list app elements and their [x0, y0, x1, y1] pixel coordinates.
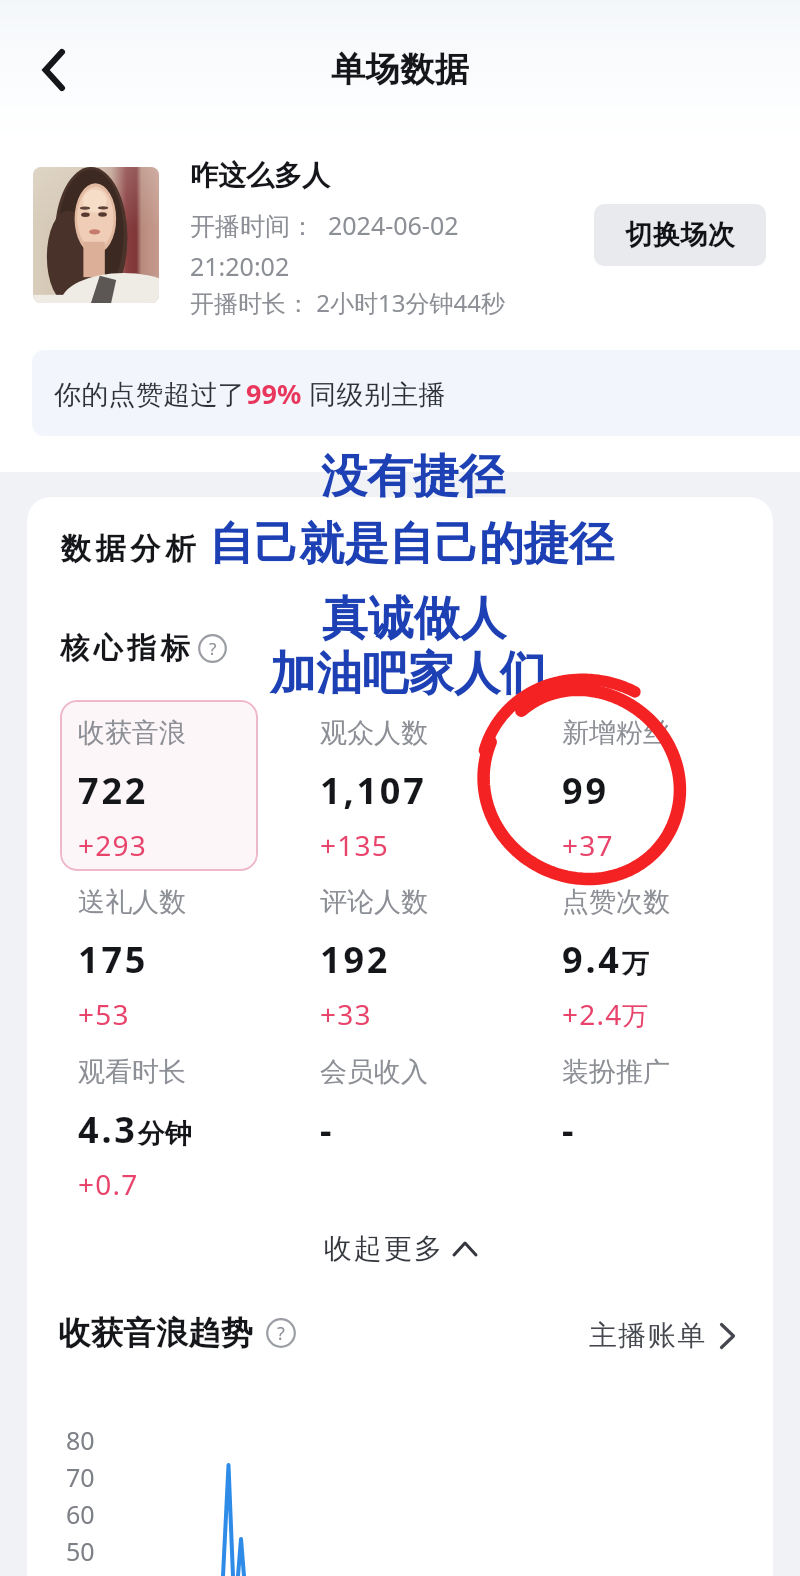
- staticText: 送礼人数: [78, 885, 186, 919]
- staticText: 会员收入: [320, 1055, 428, 1089]
- staticText: +135: [320, 826, 389, 864]
- button[interactable]: Help: [198, 634, 227, 663]
- staticText: 没有捷径: [321, 448, 505, 506]
- staticText: 收获音浪趋势: [58, 1313, 253, 1353]
- staticText: 4.3分钟: [78, 1105, 192, 1154]
- button[interactable]: 主播账单: [588, 1318, 736, 1353]
- staticText: 收获音浪: [78, 716, 186, 750]
- staticText: 评论人数: [320, 885, 428, 919]
- staticText: 主播账单: [588, 1318, 706, 1353]
- staticText: -: [562, 1105, 577, 1154]
- staticText: 咋这么多人: [190, 158, 330, 193]
- staticText: 80: [66, 1423, 95, 1457]
- staticText: 50: [66, 1534, 95, 1568]
- staticText: +33: [320, 995, 372, 1033]
- staticText: 观看时长: [78, 1055, 186, 1089]
- staticText: 切换场次: [625, 218, 735, 252]
- staticText: ?: [209, 637, 217, 660]
- staticText: +37: [562, 826, 614, 864]
- staticText: +2.4万: [562, 995, 649, 1033]
- button[interactable]: [60, 700, 258, 871]
- staticText: 点赞次数: [562, 885, 670, 919]
- staticText: 开播时间： 2024-06-02 21:20:02: [190, 208, 459, 284]
- staticText: 开播时长： 2小时13分钟44秒: [190, 286, 505, 319]
- staticText: 192: [320, 935, 391, 984]
- staticText: 你的点赞超过了: [54, 378, 246, 412]
- staticText: -: [320, 1105, 335, 1154]
- staticText: 60: [66, 1497, 95, 1531]
- button[interactable]: 收起更多: [0, 1231, 800, 1266]
- staticText: 9.4万: [562, 935, 649, 984]
- staticText: 自己就是自己的捷径: [209, 516, 614, 573]
- staticText: 观众人数: [320, 716, 428, 750]
- button[interactable]: 切换场次: [594, 204, 766, 266]
- staticText: +0.7: [78, 1165, 139, 1203]
- staticText: 核心指标: [58, 630, 192, 667]
- staticText: 70: [66, 1460, 95, 1494]
- staticText: 数据分析: [58, 530, 198, 568]
- staticText: 装扮推广: [562, 1055, 670, 1089]
- staticText: 加油吧家人们: [270, 645, 546, 703]
- staticText: +293: [78, 826, 147, 864]
- staticText: 同级别主播: [302, 375, 446, 412]
- staticText: 收起更多: [323, 1231, 443, 1266]
- staticText: 单场数据: [331, 48, 470, 91]
- staticText: 99%: [246, 375, 302, 412]
- staticText: 722: [78, 766, 149, 815]
- staticText: ?: [277, 1321, 285, 1346]
- staticText: 175: [78, 935, 149, 984]
- button[interactable]: Back: [18, 34, 90, 106]
- staticText: 真诚做人: [322, 590, 506, 648]
- button[interactable]: Help: [266, 1318, 296, 1348]
- staticText: 新增粉丝: [562, 716, 670, 750]
- staticText: 1,107: [320, 766, 427, 815]
- staticText: 99: [562, 766, 609, 815]
- staticText: +53: [78, 995, 130, 1033]
